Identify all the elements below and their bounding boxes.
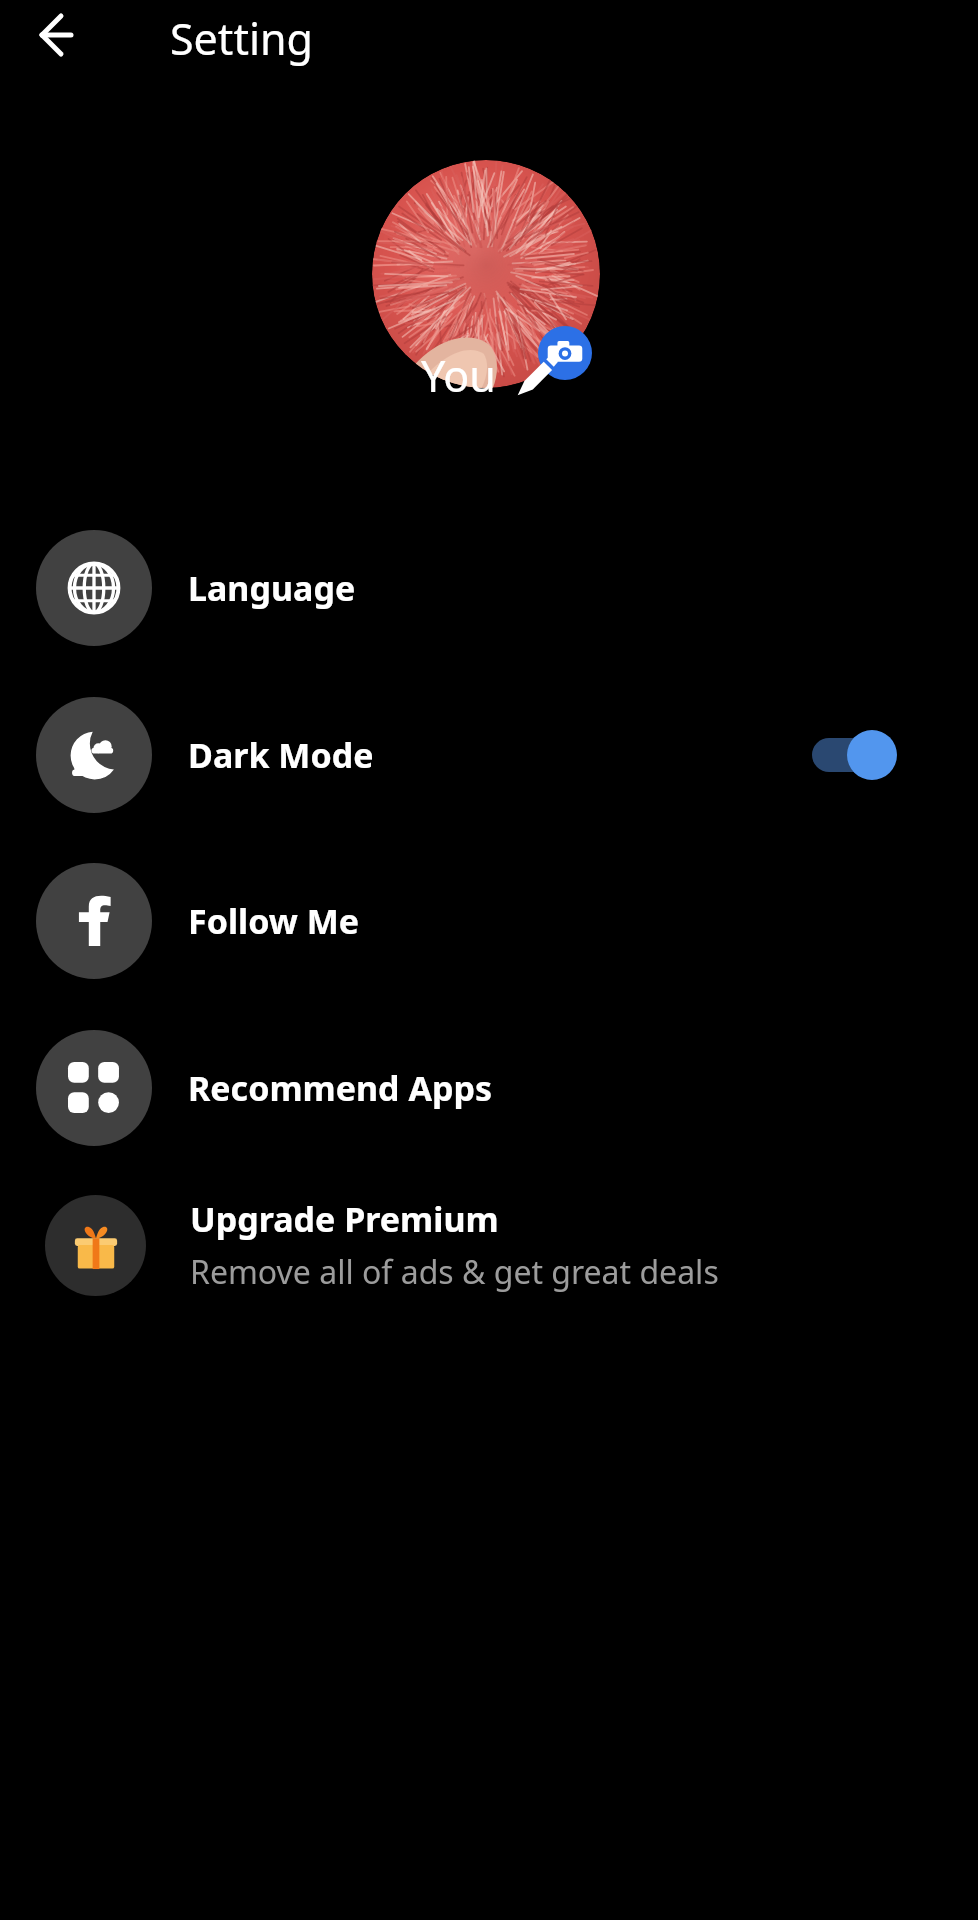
staticText: You [421, 346, 496, 402]
button[interactable]: Change photo [538, 326, 592, 380]
staticText: Dark Mode [188, 732, 374, 778]
button[interactable]: You [413, 342, 566, 406]
button[interactable]: Recommend Apps [0, 1029, 978, 1147]
staticText: Remove all of ads & get great deals [190, 1250, 719, 1294]
staticText: Follow Me [188, 898, 360, 944]
button[interactable]: Dark Mode [0, 696, 978, 814]
staticText: Setting [170, 9, 314, 68]
staticText: Upgrade Premium [190, 1196, 499, 1242]
button[interactable]: Back [26, 6, 84, 64]
staticText: Recommend Apps [188, 1065, 492, 1111]
button[interactable]: Dark Mode toggle [808, 720, 948, 790]
button[interactable]: Language [0, 529, 978, 647]
button[interactable]: Follow Me [0, 862, 978, 980]
button[interactable]: Upgrade Premium [0, 1193, 978, 1297]
button[interactable]: Profile photo [372, 160, 600, 388]
staticText: Language [188, 565, 356, 611]
